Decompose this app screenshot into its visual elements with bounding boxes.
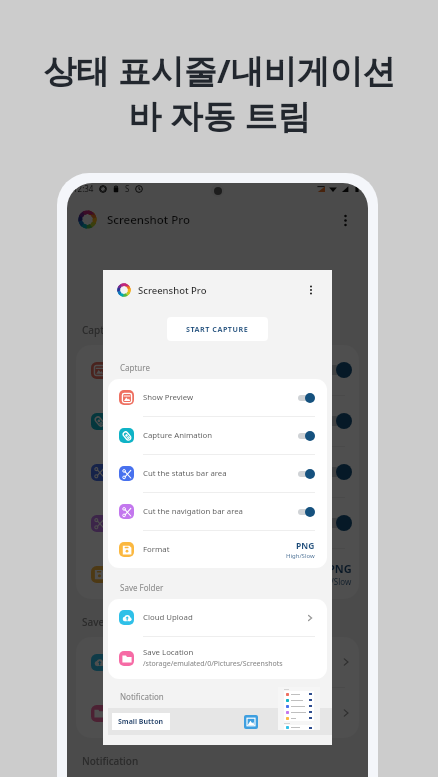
staticText: START CAPTURE (186, 324, 249, 334)
staticText: High/Slow (313, 576, 352, 587)
staticText: High/Slow (286, 552, 315, 560)
button[interactable]: Toggle (298, 468, 315, 479)
staticText: Save Location (143, 647, 194, 658)
button[interactable]: Save Location (108, 637, 327, 679)
staticText: /storage/emulated/0/Pictures/Screenshots (119, 715, 279, 726)
staticText: Notification (120, 691, 164, 702)
button[interactable]: Toggle (298, 430, 315, 441)
button[interactable]: Cloud Upload (108, 599, 327, 636)
button[interactable]: More options (334, 209, 356, 231)
button[interactable]: Small Button (112, 713, 170, 730)
button[interactable]: Capture Animation (76, 396, 359, 446)
staticText: Cut the navigation bar area (119, 516, 261, 531)
button[interactable]: Toggle (325, 514, 352, 532)
button[interactable]: Format (76, 549, 359, 599)
staticText: Capture (120, 362, 150, 373)
button[interactable]: Cut the status bar area (108, 455, 327, 492)
staticText: PNG (328, 561, 352, 576)
staticText: Capture Animation (119, 414, 217, 429)
staticText: Show Preview (119, 363, 190, 378)
staticText: Cut the navigation bar area (143, 506, 243, 517)
button[interactable]: More options (302, 281, 320, 299)
button[interactable]: Capture Animation (108, 417, 327, 454)
staticText: Screenshot Pro (107, 212, 190, 228)
button[interactable]: Toggle (298, 506, 315, 517)
button[interactable]: Toggle (325, 361, 352, 379)
staticText: Screenshot Pro (138, 284, 207, 297)
button[interactable]: Show Preview (108, 379, 327, 416)
staticText: Small Button (118, 717, 164, 727)
button[interactable]: Cut the status bar area (76, 447, 359, 497)
staticText: Format (143, 544, 170, 555)
staticText: Show Preview (143, 392, 194, 403)
other: Preview image (244, 715, 258, 729)
staticText: Cloud Upload (143, 612, 193, 623)
staticText: S (125, 183, 130, 194)
staticText: /storage/emulated/0/Pictures/Screenshots (143, 659, 283, 669)
staticText: 바 자동 트림 (128, 93, 311, 138)
staticText: 12:34 (73, 183, 94, 194)
staticText: Cut the status bar area (143, 468, 227, 479)
button[interactable]: Format (108, 531, 327, 568)
staticText: Save Folder (82, 615, 138, 629)
staticText: Save Folder (120, 582, 164, 593)
button[interactable]: Toggle (298, 392, 315, 403)
staticText: 상태 표시줄/내비게이션 (43, 48, 396, 93)
button[interactable]: Cut the navigation bar area (108, 493, 327, 530)
staticText: Capture (82, 323, 121, 337)
staticText: Notification (82, 754, 139, 768)
staticText: Cloud Upload (119, 655, 190, 670)
button[interactable]: Show Preview (76, 345, 359, 395)
staticText: Cut the status bar area (119, 465, 237, 480)
staticText: PNG (296, 540, 315, 552)
button[interactable]: Save Location (76, 688, 359, 738)
button[interactable]: Cloud Upload (76, 637, 359, 687)
staticText: Capture Animation (143, 430, 213, 441)
button[interactable]: Toggle (325, 412, 352, 430)
button[interactable]: Toggle (325, 463, 352, 481)
button[interactable]: Cut the navigation bar area (76, 498, 359, 548)
button[interactable]: START CAPTURE (167, 317, 268, 341)
staticText: Save Location (119, 700, 190, 715)
